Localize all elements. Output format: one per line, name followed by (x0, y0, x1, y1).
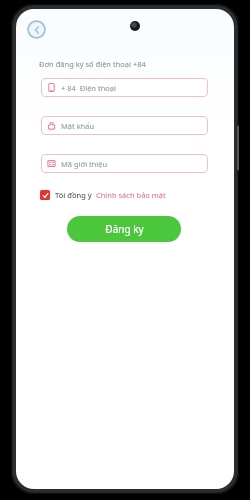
button[interactable]: Đăng ky (67, 216, 181, 242)
button[interactable]: + 84 Điện thoại (41, 78, 208, 97)
button[interactable]: Back (27, 20, 46, 39)
staticText: Đăng ky (105, 222, 144, 236)
button[interactable]: Chính sách bảo mật (96, 190, 166, 200)
staticText: Mã giới thiệu (61, 159, 108, 169)
button[interactable]: Tôi đồng ý (40, 190, 166, 200)
staticText: Mật khẩu (61, 121, 95, 131)
button[interactable]: Mật khẩu (41, 116, 208, 135)
button[interactable]: Mã giới thiệu (41, 154, 208, 173)
staticText: + 84 Điện thoại (61, 83, 116, 93)
staticText: Đơn đăng ký số điện thoại +84 (39, 59, 146, 69)
staticText: Tôi đồng ý (55, 190, 92, 200)
